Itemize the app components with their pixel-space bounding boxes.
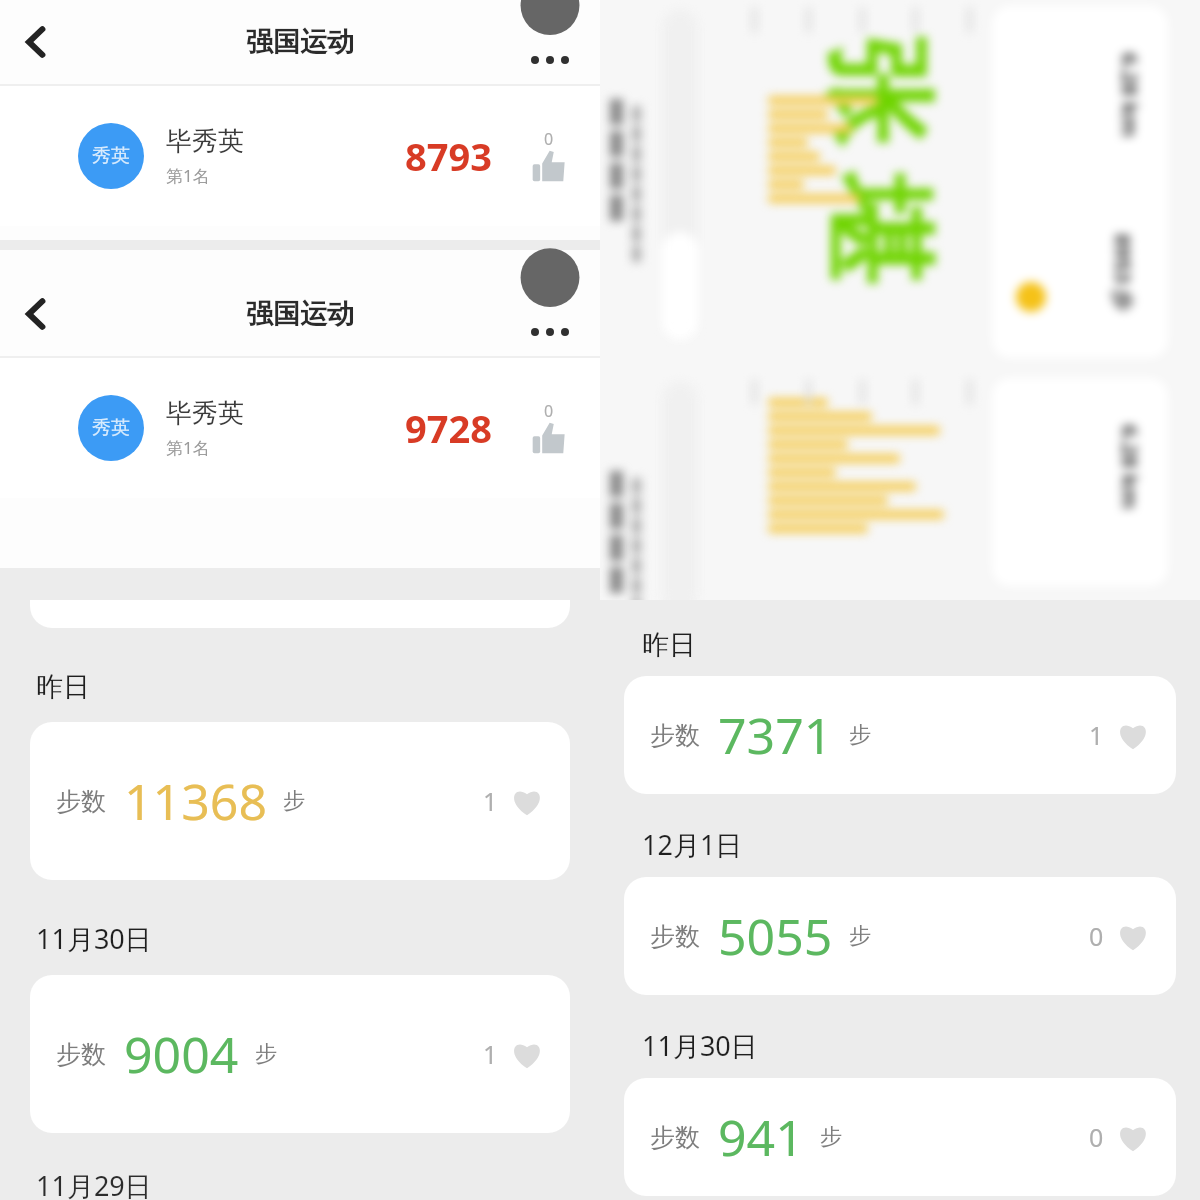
staticText: 9728 <box>405 402 492 454</box>
button[interactable]: 秀英 <box>0 358 600 498</box>
staticText: 5055 <box>718 902 833 970</box>
staticText: 步数 <box>650 921 700 952</box>
staticText: 昨日 <box>642 628 696 662</box>
staticText: 7371 <box>718 701 833 769</box>
staticText: 步 <box>255 1040 277 1068</box>
staticText: 秀英 <box>92 144 130 168</box>
staticText: 张 堪 <box>807 38 957 287</box>
staticText: 1 <box>483 784 498 818</box>
staticText: 11月30日 <box>642 1027 758 1064</box>
staticText: 0 <box>544 128 554 150</box>
staticText: 步数 <box>650 1122 700 1153</box>
staticText: 941 <box>718 1103 804 1171</box>
staticText: 第1名 <box>166 164 210 187</box>
button[interactable]: 步数 <box>624 676 1176 794</box>
button[interactable]: 点赞 <box>1089 718 1150 752</box>
staticText: 0 <box>544 400 554 422</box>
staticText: 昨日 <box>36 670 90 704</box>
button[interactable]: 点赞 <box>532 128 566 184</box>
staticText: 步 <box>820 1123 842 1151</box>
staticText: 8793 <box>405 130 492 182</box>
staticText: 第1名 <box>166 436 210 459</box>
staticText: 强国运动 <box>246 25 354 59</box>
button[interactable]: 步数 <box>30 722 570 880</box>
button[interactable]: 点赞 <box>483 784 544 818</box>
button[interactable]: 更多 <box>518 282 582 346</box>
staticText: 强国运动 <box>246 297 354 331</box>
staticText: 步 <box>849 922 871 950</box>
staticText: 6.28 km <box>1115 424 1145 509</box>
button[interactable]: 步数 <box>624 1078 1176 1196</box>
button[interactable]: 返回 <box>8 286 64 342</box>
staticText: 步 <box>283 787 305 815</box>
button[interactable]: 点赞 <box>1089 919 1150 953</box>
staticText: 1 <box>483 1037 498 1071</box>
staticText: 步数 <box>56 786 106 817</box>
staticText: 毕秀英 <box>166 125 244 158</box>
staticText: 6.28 km <box>1115 52 1145 137</box>
staticText: 9004 <box>124 1020 239 1088</box>
staticText: 11月29日 <box>36 1167 152 1200</box>
button[interactable]: 步数 <box>30 975 570 1133</box>
staticText: 步数 <box>650 720 700 751</box>
staticText: 8953 步 <box>1108 233 1138 312</box>
button[interactable]: 步数 <box>624 877 1176 995</box>
button[interactable]: 点赞 <box>1089 1120 1150 1154</box>
staticText: 11月30日 <box>36 920 152 957</box>
staticText: 毕秀英 <box>166 397 244 430</box>
staticText: 步数 <box>56 1039 106 1070</box>
staticText: 1 <box>1089 718 1104 752</box>
button[interactable]: 点赞 <box>483 1037 544 1071</box>
button[interactable]: 返回 <box>8 14 64 70</box>
staticText: 0 <box>1089 1120 1104 1154</box>
staticText: 步 <box>849 721 871 749</box>
staticText: 秀英 <box>92 416 130 440</box>
staticText: 0 <box>1089 919 1104 953</box>
button[interactable]: 更多 <box>518 10 582 74</box>
button[interactable]: 秀英 <box>0 86 600 226</box>
staticText: 12月1日 <box>642 826 743 863</box>
button[interactable]: 点赞 <box>532 400 566 456</box>
staticText: 11368 <box>124 767 267 835</box>
